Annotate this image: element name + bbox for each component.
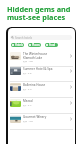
staticText: $$ · 4.4 bbox=[23, 87, 32, 90]
button[interactable]: The Winterhouse Klamath Lake bbox=[8, 51, 75, 67]
other: Open bbox=[69, 85, 73, 89]
staticText: $$ · 4.6 bbox=[23, 71, 32, 74]
staticText: $$ · 4.7 bbox=[23, 103, 32, 106]
other: Open bbox=[69, 54, 73, 58]
button[interactable]: Search hotels bbox=[10, 35, 72, 40]
staticText: Food bbox=[49, 43, 56, 47]
button[interactable]: Places bbox=[28, 43, 41, 47]
staticText: Hidden gems and must-see places bbox=[7, 4, 71, 22]
button[interactable]: Gourmet Winery bbox=[8, 114, 75, 130]
staticText: $$$ · 4.8 bbox=[23, 59, 33, 62]
staticText: Search hotels bbox=[15, 36, 32, 40]
button[interactable]: Hotels bbox=[11, 43, 24, 47]
staticText: Ballerina House bbox=[23, 83, 46, 87]
staticText: Mezcal bbox=[23, 99, 33, 103]
staticText: Summer Hotel & Spa bbox=[23, 67, 53, 71]
other: Open bbox=[69, 69, 73, 73]
staticText: Hotels bbox=[15, 43, 23, 47]
button[interactable]: Ballerina House bbox=[8, 82, 75, 98]
button[interactable]: Summer Hotel & Spa bbox=[8, 66, 75, 82]
other: Open bbox=[69, 101, 73, 105]
staticText: The Winterhouse Klamath Lake bbox=[23, 52, 48, 59]
staticText: Gourmet Winery bbox=[23, 115, 47, 119]
button[interactable]: Food bbox=[45, 43, 58, 47]
staticText: $$$ · 4.9 bbox=[23, 119, 33, 122]
staticText: Places bbox=[32, 43, 40, 47]
button[interactable]: Mezcal bbox=[8, 98, 75, 114]
other: Open bbox=[69, 117, 73, 121]
